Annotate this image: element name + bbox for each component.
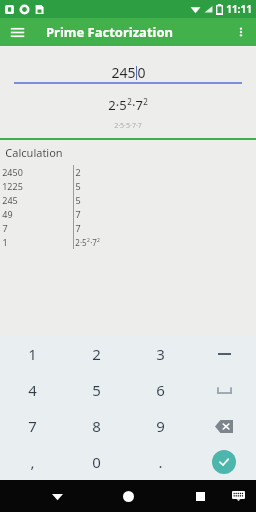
button[interactable]: Recent apps	[187, 483, 213, 509]
button[interactable]: 8	[64, 408, 128, 444]
staticText: 5	[75, 194, 81, 206]
staticText: 2450	[2, 166, 23, 178]
staticText: 1	[2, 236, 8, 248]
button[interactable]: Open navigation menu	[6, 21, 28, 43]
button[interactable]: 7	[0, 408, 64, 444]
button[interactable]: Backspace	[192, 408, 256, 444]
staticText: 1225	[2, 180, 23, 192]
staticText: 6	[156, 380, 165, 400]
staticText: .	[158, 452, 163, 472]
staticText: 11:11	[226, 2, 252, 16]
staticText: 2	[87, 237, 90, 244]
staticText: 0	[137, 63, 146, 82]
staticText: Prime Factorization	[46, 23, 173, 41]
button[interactable]: Back	[44, 483, 70, 509]
staticText: ·7	[132, 96, 143, 114]
staticText: 49	[2, 208, 13, 220]
button[interactable]: 6	[128, 372, 192, 408]
button[interactable]: Home	[115, 483, 141, 509]
staticText: 2	[97, 237, 100, 244]
staticText: 7	[28, 416, 37, 436]
staticText: ·7	[90, 237, 97, 248]
staticText: Calculation	[5, 145, 63, 160]
button[interactable]: .	[128, 444, 192, 480]
staticText: 2·5	[75, 237, 87, 248]
staticText: 245	[111, 63, 136, 82]
button[interactable]: 4	[0, 372, 64, 408]
button[interactable]: ,	[0, 444, 64, 480]
staticText: 7	[75, 208, 81, 220]
staticText: 2	[127, 96, 132, 107]
button[interactable]: Confirm	[192, 444, 256, 480]
staticText: 7	[2, 222, 8, 234]
staticText: 7	[75, 222, 81, 234]
button[interactable]: Minus	[192, 335, 256, 372]
button[interactable]: 2	[64, 335, 128, 372]
button[interactable]: Change keyboard	[226, 484, 250, 508]
staticText: ,	[30, 452, 35, 472]
staticText: 5	[75, 180, 81, 192]
button[interactable]: 1	[0, 335, 64, 372]
button[interactable]: 245	[14, 62, 242, 82]
staticText: 2	[92, 344, 101, 364]
staticText: 8	[92, 416, 101, 436]
staticText: 5	[92, 380, 101, 400]
button[interactable]: More options	[230, 21, 252, 43]
button[interactable]: 3	[128, 335, 192, 372]
staticText: 4	[28, 380, 37, 400]
button[interactable]: 9	[128, 408, 192, 444]
button[interactable]: Space	[192, 372, 256, 408]
staticText: 3	[156, 344, 165, 364]
button[interactable]: 0	[64, 444, 128, 480]
staticText: 2·5	[108, 96, 127, 114]
staticText: 9	[156, 416, 165, 436]
staticText: 2	[143, 96, 148, 107]
staticText: 1	[28, 344, 37, 364]
staticText: 2·5·5·7·7	[114, 121, 142, 131]
staticText: 245	[2, 194, 18, 206]
staticText: 0	[92, 452, 101, 472]
staticText: 2	[75, 166, 81, 178]
button[interactable]: 5	[64, 372, 128, 408]
